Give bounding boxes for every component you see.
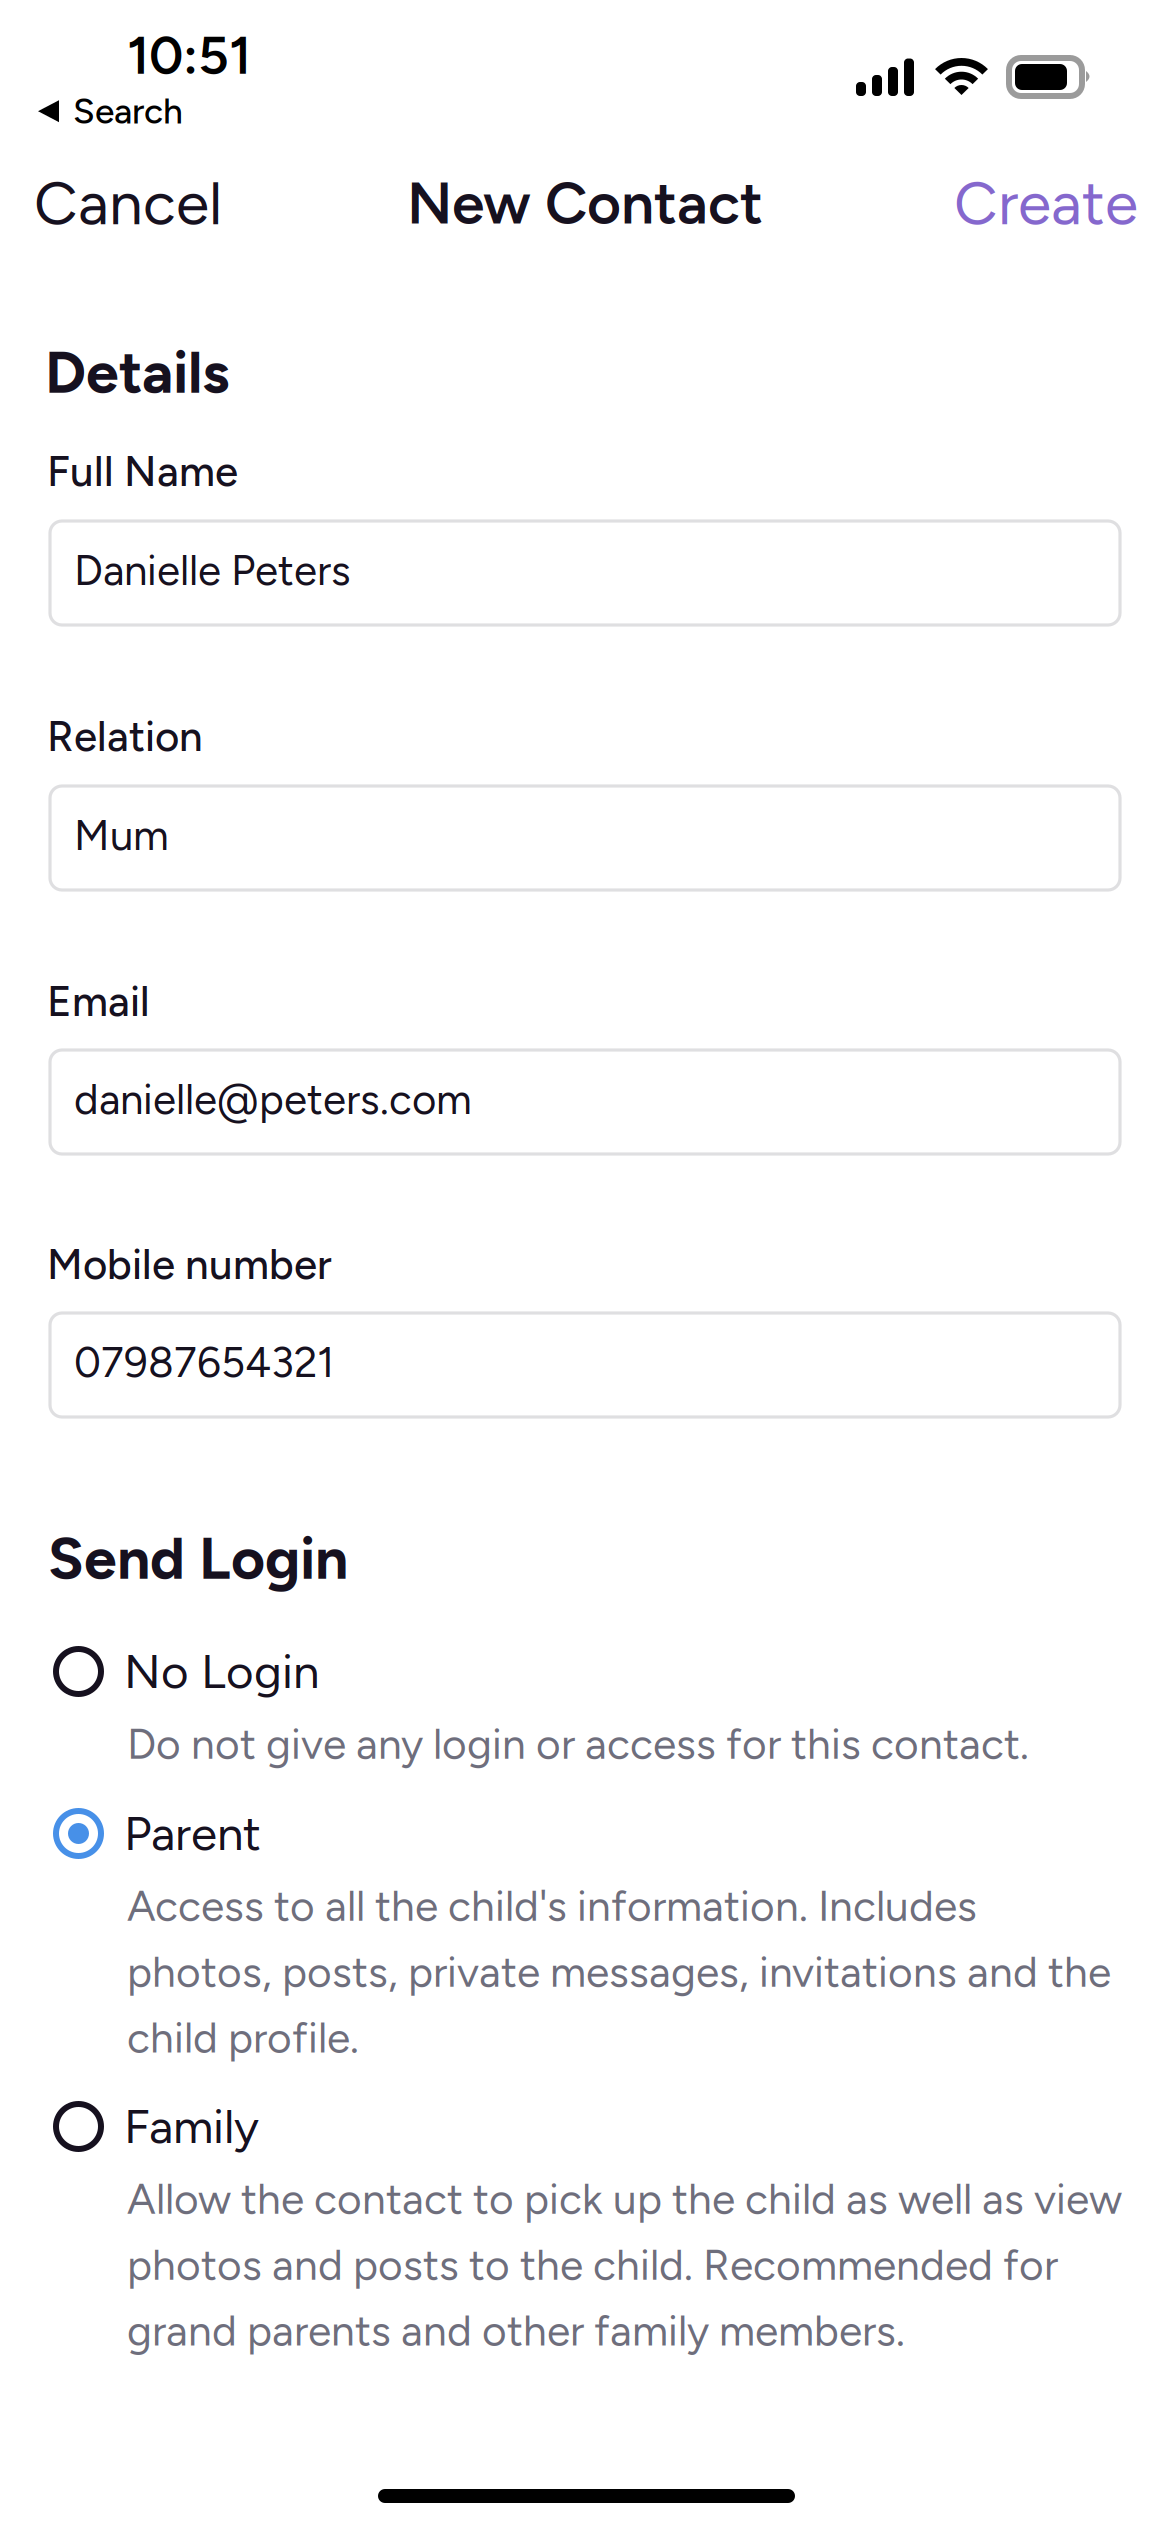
staticText: Parent [124,1805,261,1862]
staticText: Family [124,2098,259,2155]
button[interactable]: Family [53,2101,1141,2371]
button[interactable]: Cancel [34,171,234,235]
staticText: Allow the contact to pick up the child a… [127,2173,1122,2356]
button[interactable]: danielle@peters.com [50,1050,1120,1154]
staticText: Mum [74,810,169,860]
staticText: 07987654321 [74,1337,334,1387]
button[interactable]: Search [38,90,183,132]
staticText: 10:51 [127,23,251,87]
button[interactable]: Create [930,171,1138,235]
staticText: New Contact [407,168,763,238]
staticText: Email [47,976,150,1026]
staticText: Access to all the child's information. I… [127,1880,1111,2063]
staticText: Full Name [47,446,238,496]
button[interactable]: 07987654321 [50,1313,1120,1417]
staticText: Mobile number [47,1239,332,1289]
button[interactable]: Mum [50,786,1120,890]
staticText: Do not give any login or access for this… [127,1718,1029,1769]
staticText: Cancel [34,167,222,239]
button[interactable]: Parent [53,1808,1141,2078]
staticText: No Login [124,1643,319,1700]
staticText: Search [73,90,183,132]
button[interactable]: No Login [53,1646,1141,1784]
staticText: Danielle Peters [74,545,351,595]
staticText: danielle@peters.com [74,1074,472,1124]
button[interactable]: Danielle Peters [50,521,1120,625]
staticText: Relation [47,711,203,761]
staticText: Create [954,167,1138,239]
staticText: Details [45,337,229,407]
staticText: Send Login [48,1523,348,1593]
